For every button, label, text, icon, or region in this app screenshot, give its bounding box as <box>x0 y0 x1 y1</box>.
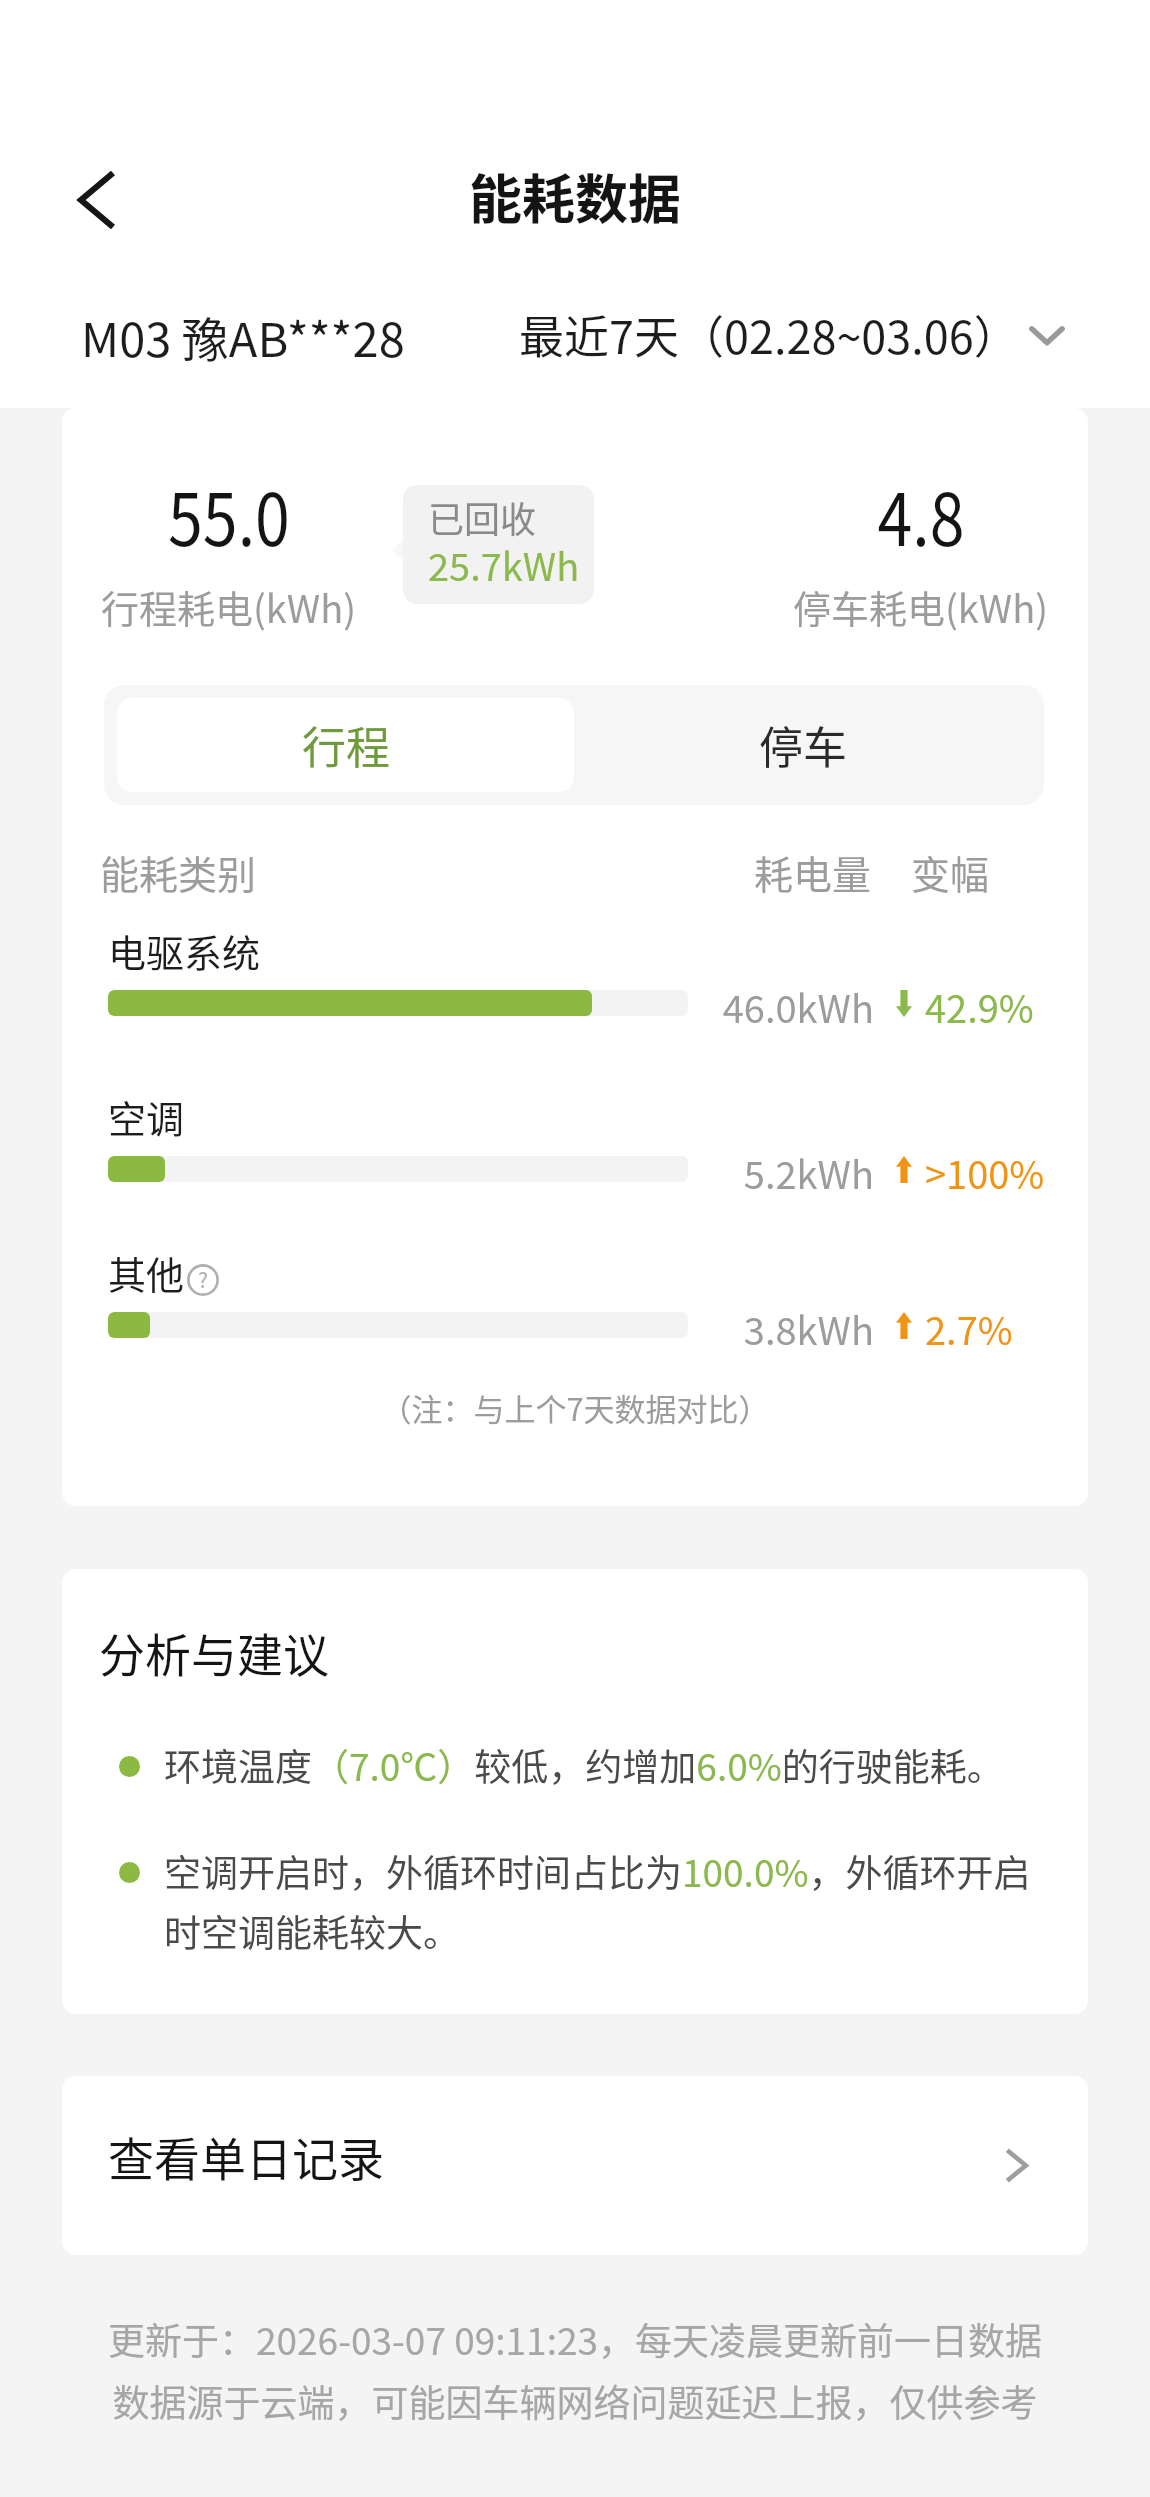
staticText: 查看单日记录 <box>108 2123 384 2190</box>
staticText: 耗电量 <box>754 844 914 900</box>
staticText: 行程耗电(kWh) <box>101 579 357 634</box>
button[interactable]: Help <box>187 1264 219 1296</box>
staticText: 46.0kWh <box>688 979 874 1027</box>
staticText: 其他 <box>108 1245 185 1293</box>
staticText: 环境温度（7.0℃）较低，约增加6.0%的行驶能耗。 <box>164 1738 1004 1792</box>
staticText: ? <box>198 1264 208 1294</box>
staticText: 停车耗电(kWh) <box>793 579 1049 634</box>
staticText: M03 豫AB***28 <box>81 302 405 370</box>
staticText: 55.0 <box>168 462 290 566</box>
staticText: >100% <box>925 1145 1045 1193</box>
button[interactable]: 行程 <box>117 698 574 792</box>
button[interactable]: 停车 <box>574 698 1031 792</box>
button[interactable]: Back <box>52 155 142 245</box>
staticText: 更新于：2026-03-07 09:11:23，每天凌晨更新前一日数据 <box>0 2312 1150 2366</box>
staticText: 3.8kWh <box>688 1301 874 1349</box>
staticText: 42.9% <box>925 979 1034 1027</box>
staticText: 停车 <box>759 713 847 777</box>
staticText: 数据源于云端，可能因车辆网络问题延迟上报，仅供参考 <box>0 2374 1150 2428</box>
staticText: 变幅 <box>911 844 1031 900</box>
staticText: 分析与建议 <box>99 1619 329 1686</box>
staticText: 电驱系统 <box>108 923 261 971</box>
staticText: 5.2kWh <box>688 1145 874 1193</box>
staticText: 4.8 <box>877 462 964 566</box>
staticText: 能耗数据 <box>0 158 1150 235</box>
staticText: （注：与上个7天数据对比） <box>62 1385 1088 1430</box>
staticText: 能耗类别 <box>100 844 300 900</box>
staticText: 已回收 <box>428 491 537 543</box>
staticText: 25.7kWh <box>428 537 580 592</box>
staticText: 最近7天（02.28~03.06） <box>519 302 1019 367</box>
button[interactable]: 查看单日记录 <box>62 2076 1088 2255</box>
staticText: 行程 <box>302 713 390 777</box>
staticText: 空调开启时，外循环时间占比为100.0%，外循环开启时空调能耗较大。 <box>164 1844 1060 1958</box>
button[interactable]: 最近7天（02.28~03.06） <box>519 302 1070 367</box>
staticText: 空调 <box>108 1089 185 1137</box>
staticText: 2.7% <box>925 1301 1013 1349</box>
